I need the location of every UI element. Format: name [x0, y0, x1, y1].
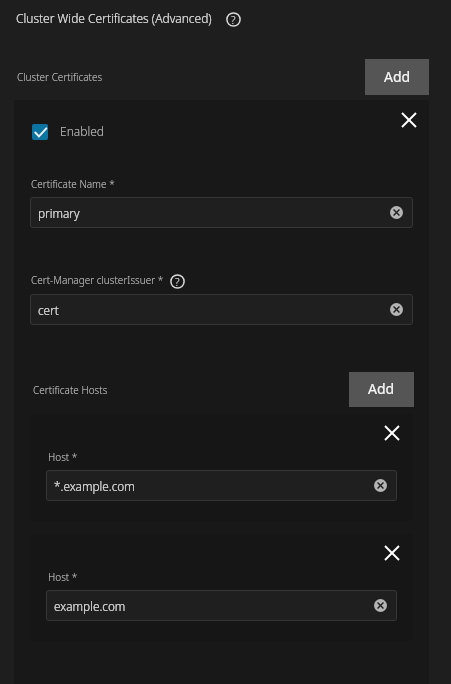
button[interactable]: primary	[30, 197, 413, 228]
button[interactable]: Add	[365, 59, 429, 95]
button[interactable]	[32, 124, 48, 140]
staticText: Host *	[48, 570, 78, 584]
staticText: ?	[231, 12, 236, 27]
staticText: Enabled	[60, 123, 104, 139]
button[interactable]: Remove	[379, 420, 405, 446]
staticText: Add	[368, 379, 395, 398]
staticText: ?	[175, 274, 180, 289]
staticText: *.example.com	[54, 478, 135, 494]
staticText: cert	[38, 302, 59, 318]
staticText: Cluster Certificates	[17, 70, 103, 84]
button[interactable]	[30, 534, 413, 641]
button[interactable]	[14, 100, 429, 684]
button[interactable]: Help	[226, 12, 241, 27]
staticText: Cluster Wide Certificates (Advanced)	[16, 10, 212, 26]
button[interactable]: Remove	[396, 107, 422, 133]
button[interactable]: Remove	[379, 540, 405, 566]
staticText: Cert-Manager clusterIssuer *	[31, 273, 164, 287]
staticText: Host *	[48, 450, 78, 464]
button[interactable]: Clear	[370, 595, 390, 615]
staticText: Certificate Hosts	[33, 383, 108, 397]
staticText: example.com	[54, 598, 126, 614]
staticText: Add	[384, 67, 411, 86]
button[interactable]: cert	[30, 294, 413, 325]
button[interactable]: Clear	[370, 475, 390, 495]
staticText: Certificate Name *	[31, 177, 115, 191]
button[interactable]: Add	[349, 372, 414, 407]
staticText: primary	[38, 205, 80, 221]
button[interactable]: *.example.com	[46, 470, 397, 501]
button[interactable]: Help	[170, 274, 185, 289]
button[interactable]: Clear	[386, 202, 406, 222]
button[interactable]: Clear	[386, 299, 406, 319]
button[interactable]: example.com	[46, 590, 397, 621]
button[interactable]	[30, 414, 413, 521]
